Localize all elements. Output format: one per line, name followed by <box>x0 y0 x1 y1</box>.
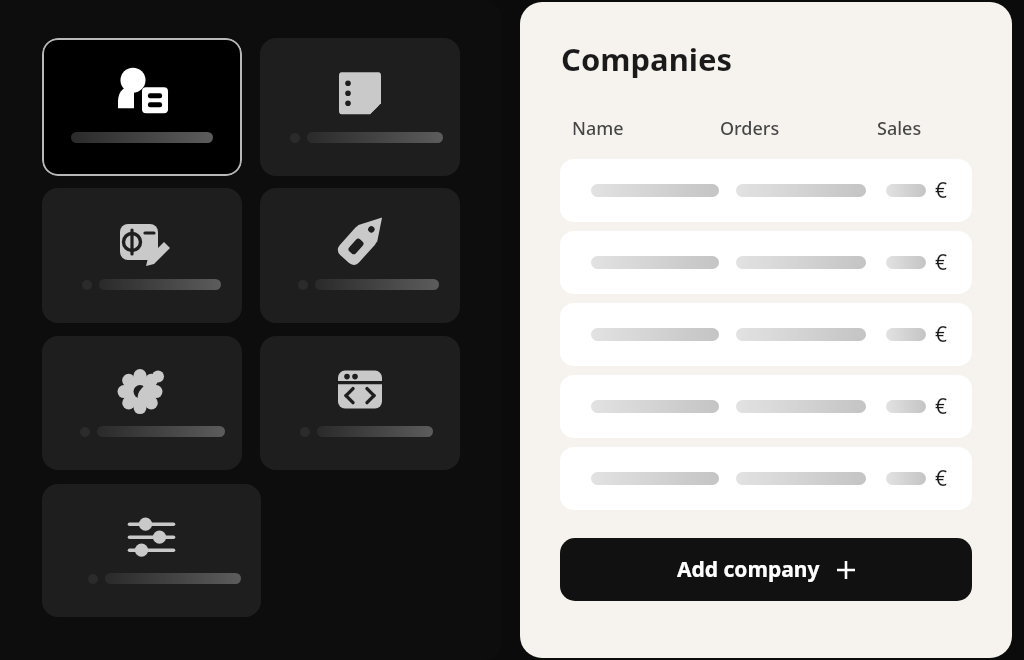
button[interactable]: Company row <box>560 231 972 294</box>
button[interactable]: Customize <box>42 336 242 470</box>
staticText: € <box>935 320 948 349</box>
button[interactable]: Company row <box>560 159 972 222</box>
button[interactable]: Company row <box>560 447 972 510</box>
button[interactable]: Settings <box>42 484 261 617</box>
staticText: Companies <box>561 38 733 80</box>
staticText: € <box>935 464 948 493</box>
button[interactable]: Company row <box>560 375 972 438</box>
button[interactable]: Contacts <box>42 38 242 176</box>
button[interactable]: Notes <box>260 38 460 176</box>
staticText: Add company <box>677 555 820 584</box>
button[interactable]: Add company <box>560 538 972 601</box>
staticText: Orders <box>720 116 780 141</box>
button[interactable]: Company row <box>560 303 972 366</box>
button[interactable]: Products <box>260 188 460 323</box>
staticText: € <box>935 248 948 277</box>
staticText: € <box>935 392 948 421</box>
staticText: Name <box>572 116 624 141</box>
staticText: Sales <box>877 116 922 141</box>
button[interactable]: Developer <box>260 336 460 470</box>
button[interactable]: Invoices <box>42 188 242 323</box>
staticText: € <box>935 176 948 205</box>
